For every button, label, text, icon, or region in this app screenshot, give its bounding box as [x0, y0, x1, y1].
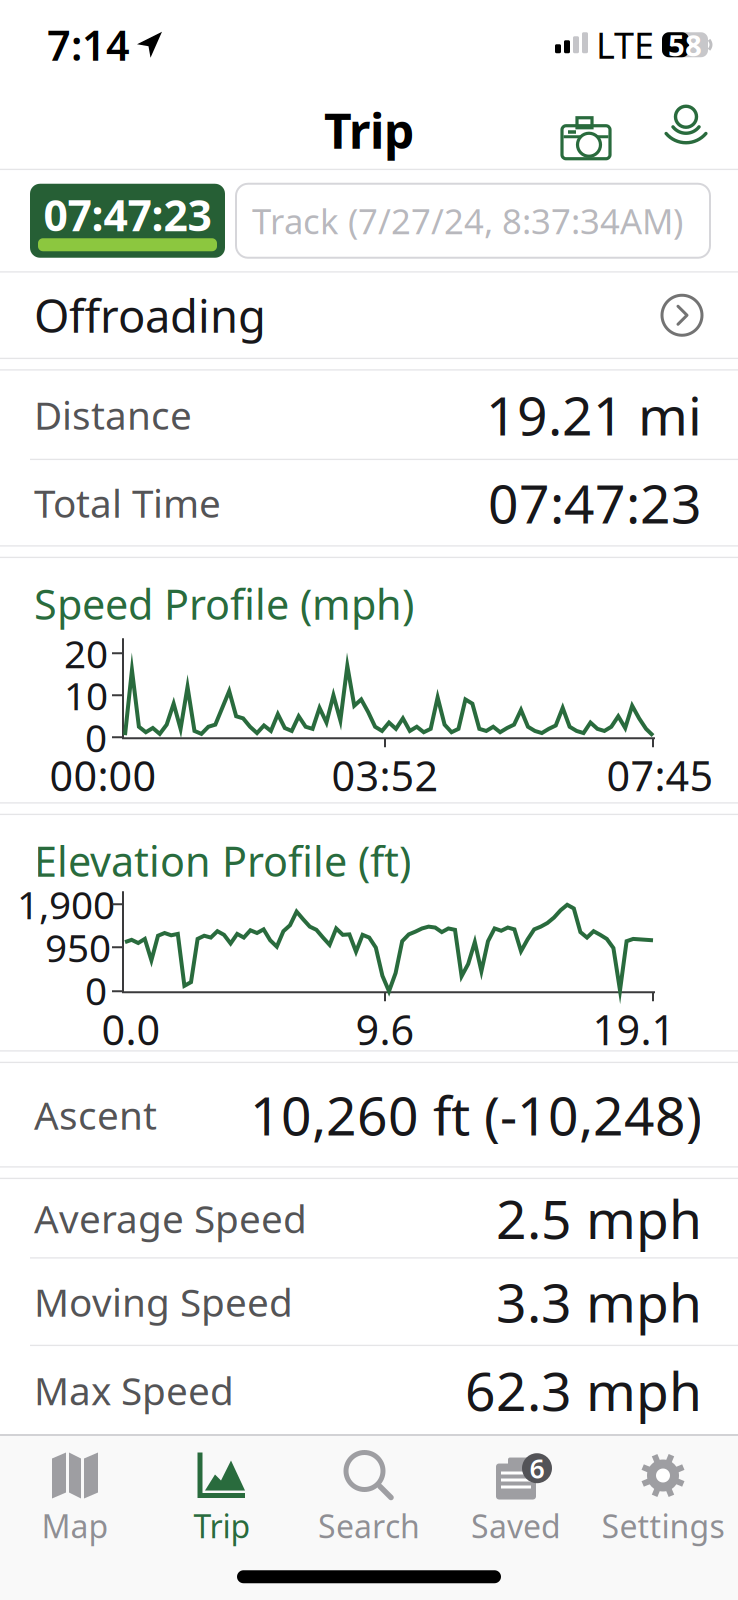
staticText: Elevation Profile (ft) [34, 833, 411, 888]
staticText: 07:47:23 [43, 186, 211, 243]
staticText: 0 [85, 712, 107, 763]
staticText: 62.3 mph [465, 1355, 702, 1426]
staticText: 2.5 mph [496, 1183, 702, 1254]
button[interactable]: Settings [589, 1452, 736, 1548]
button[interactable]: Recording time [30, 184, 225, 258]
button[interactable]: Offroading [0, 273, 738, 358]
staticText: Speed Profile (mph) [34, 576, 414, 631]
staticText: Distance [34, 389, 192, 440]
staticText: 3.3 mph [496, 1266, 702, 1337]
button[interactable]: Drop Waypoint [660, 104, 712, 156]
staticText: 9.6 [355, 1002, 414, 1057]
staticText: 07:45 [606, 748, 713, 803]
staticText: 19.1 [592, 1002, 675, 1057]
staticText: 58 [668, 25, 702, 64]
staticText: 7:14 [47, 17, 130, 72]
button[interactable]: Search [295, 1452, 442, 1548]
staticText: 1,900 [17, 879, 115, 930]
button[interactable]: 6 [442, 1452, 589, 1548]
button[interactable]: Track name [236, 184, 710, 258]
staticText: Max Speed [34, 1365, 234, 1416]
staticText: 03:52 [331, 748, 438, 803]
staticText: Settings [601, 1504, 724, 1547]
staticText: Trip [324, 98, 414, 162]
staticText: Total Time [34, 477, 221, 528]
staticText: Saved [471, 1504, 561, 1547]
staticText: Offroading [34, 285, 266, 345]
staticText: Track (7/27/24, 8:37:34AM) [252, 198, 683, 244]
staticText: 950 [45, 922, 111, 973]
button[interactable]: Map [1, 1452, 148, 1548]
button[interactable]: Trip [148, 1452, 295, 1548]
staticText: 20 [64, 628, 108, 679]
staticText: 6 [529, 1450, 544, 1486]
staticText: 10,260 ft (-10,248) [250, 1079, 702, 1150]
staticText: 19.21 mi [486, 379, 702, 450]
staticText: Search [318, 1504, 420, 1547]
staticText: Moving Speed [34, 1276, 293, 1327]
staticText: Map [41, 1504, 108, 1547]
staticText: 0.0 [101, 1002, 160, 1057]
staticText: 00:00 [49, 748, 156, 803]
staticText: Average Speed [34, 1193, 307, 1244]
staticText: 10 [64, 670, 108, 721]
staticText: LTE [596, 21, 654, 69]
staticText: 0 [85, 965, 107, 1016]
button[interactable]: Take Photo [558, 107, 610, 153]
staticText: Trip [193, 1504, 250, 1547]
staticText: Ascent [34, 1089, 157, 1140]
staticText: 07:47:23 [488, 467, 702, 538]
